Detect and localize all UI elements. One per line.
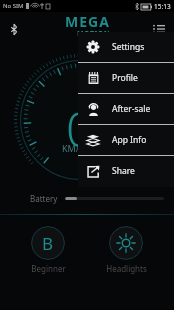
- staticText: 0: [66, 96, 94, 161]
- staticText: Headlights: [106, 263, 147, 274]
- staticText: Share: [112, 165, 135, 177]
- button[interactable]: Share: [78, 156, 174, 186]
- staticText: MEGA: [65, 12, 110, 31]
- staticText: After-sale: [112, 103, 151, 115]
- button[interactable]: Profile: [78, 63, 174, 93]
- staticText: Profile: [112, 72, 138, 84]
- button[interactable]: App Info: [78, 125, 174, 155]
- staticText: B: [42, 232, 54, 255]
- staticText: Settings: [112, 41, 145, 53]
- staticText: App Info: [112, 134, 147, 146]
- staticText: KM/H: [62, 142, 86, 154]
- button[interactable]: After-sale: [78, 94, 174, 124]
- button[interactable]: Headlights: [95, 224, 157, 276]
- button[interactable]: B: [17, 224, 79, 276]
- button[interactable]: Settings: [78, 32, 174, 62]
- button[interactable]: Menu: [150, 20, 168, 38]
- staticText: MOTION: [77, 29, 110, 39]
- staticText: No SIM: [3, 2, 24, 10]
- staticText: 15:13: [154, 2, 171, 11]
- staticText: Battery: [30, 193, 58, 204]
- button[interactable]: Bluetooth: [6, 21, 22, 37]
- staticText: Beginner: [31, 263, 66, 274]
